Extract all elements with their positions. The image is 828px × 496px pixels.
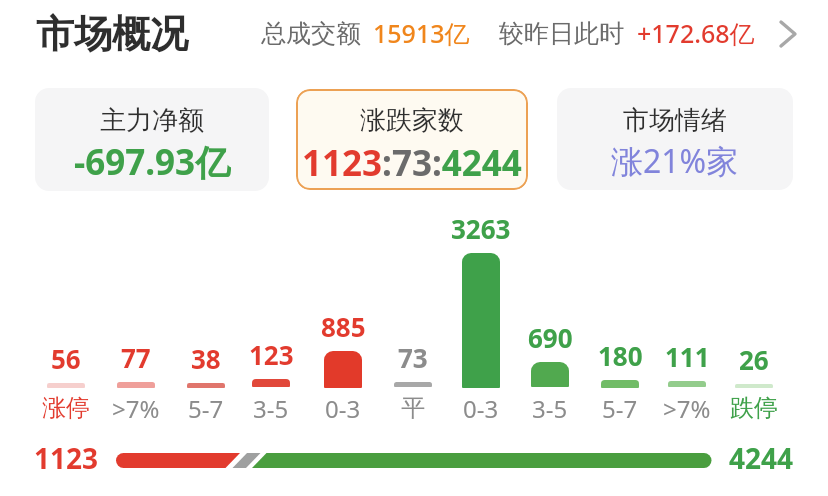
staticText: +172.68亿 [637, 16, 755, 50]
staticText: 4244 [729, 439, 794, 477]
staticText: 涨停 [42, 393, 90, 423]
staticText: 5-7 [188, 392, 224, 425]
staticText: 885 [321, 309, 366, 344]
staticText: 26 [739, 342, 769, 377]
staticText: 0-3 [463, 392, 499, 425]
staticText: 主力净额 [100, 104, 204, 137]
staticText: 5-7 [602, 392, 638, 425]
button[interactable]: +172.68亿 [626, 11, 766, 55]
staticText: 较昨日此时 [499, 18, 624, 49]
staticText: 77 [121, 340, 151, 375]
staticText: 690 [528, 320, 573, 355]
staticText: 涨21%家 [611, 139, 739, 183]
button[interactable] [557, 88, 793, 190]
staticText: 1123 [34, 439, 99, 477]
staticText: 3263 [451, 211, 511, 246]
staticText: -697.93亿 [74, 138, 231, 184]
staticText: >7% [663, 392, 711, 425]
staticText: 1123:73:4244 [302, 139, 522, 183]
staticText: 15913亿 [373, 16, 470, 50]
button[interactable] [35, 88, 269, 191]
staticText: 3-5 [532, 392, 568, 425]
staticText: 跌停 [730, 393, 778, 423]
staticText: >7% [112, 392, 160, 425]
staticText: 3-5 [253, 392, 289, 425]
staticText: 180 [598, 338, 643, 373]
staticText: 38 [191, 341, 221, 376]
staticText: 111 [665, 339, 710, 374]
staticText: 涨跌家数 [360, 104, 464, 137]
staticText: 0-3 [325, 392, 361, 425]
staticText: 市场情绪 [623, 104, 727, 137]
staticText: 平 [401, 393, 425, 423]
staticText: 123 [249, 337, 294, 372]
staticText: 56 [51, 341, 81, 376]
staticText: 市场概况 [36, 10, 188, 58]
staticText: 73 [398, 340, 428, 375]
staticText: 总成交额 [261, 18, 361, 49]
button[interactable] [296, 89, 528, 190]
